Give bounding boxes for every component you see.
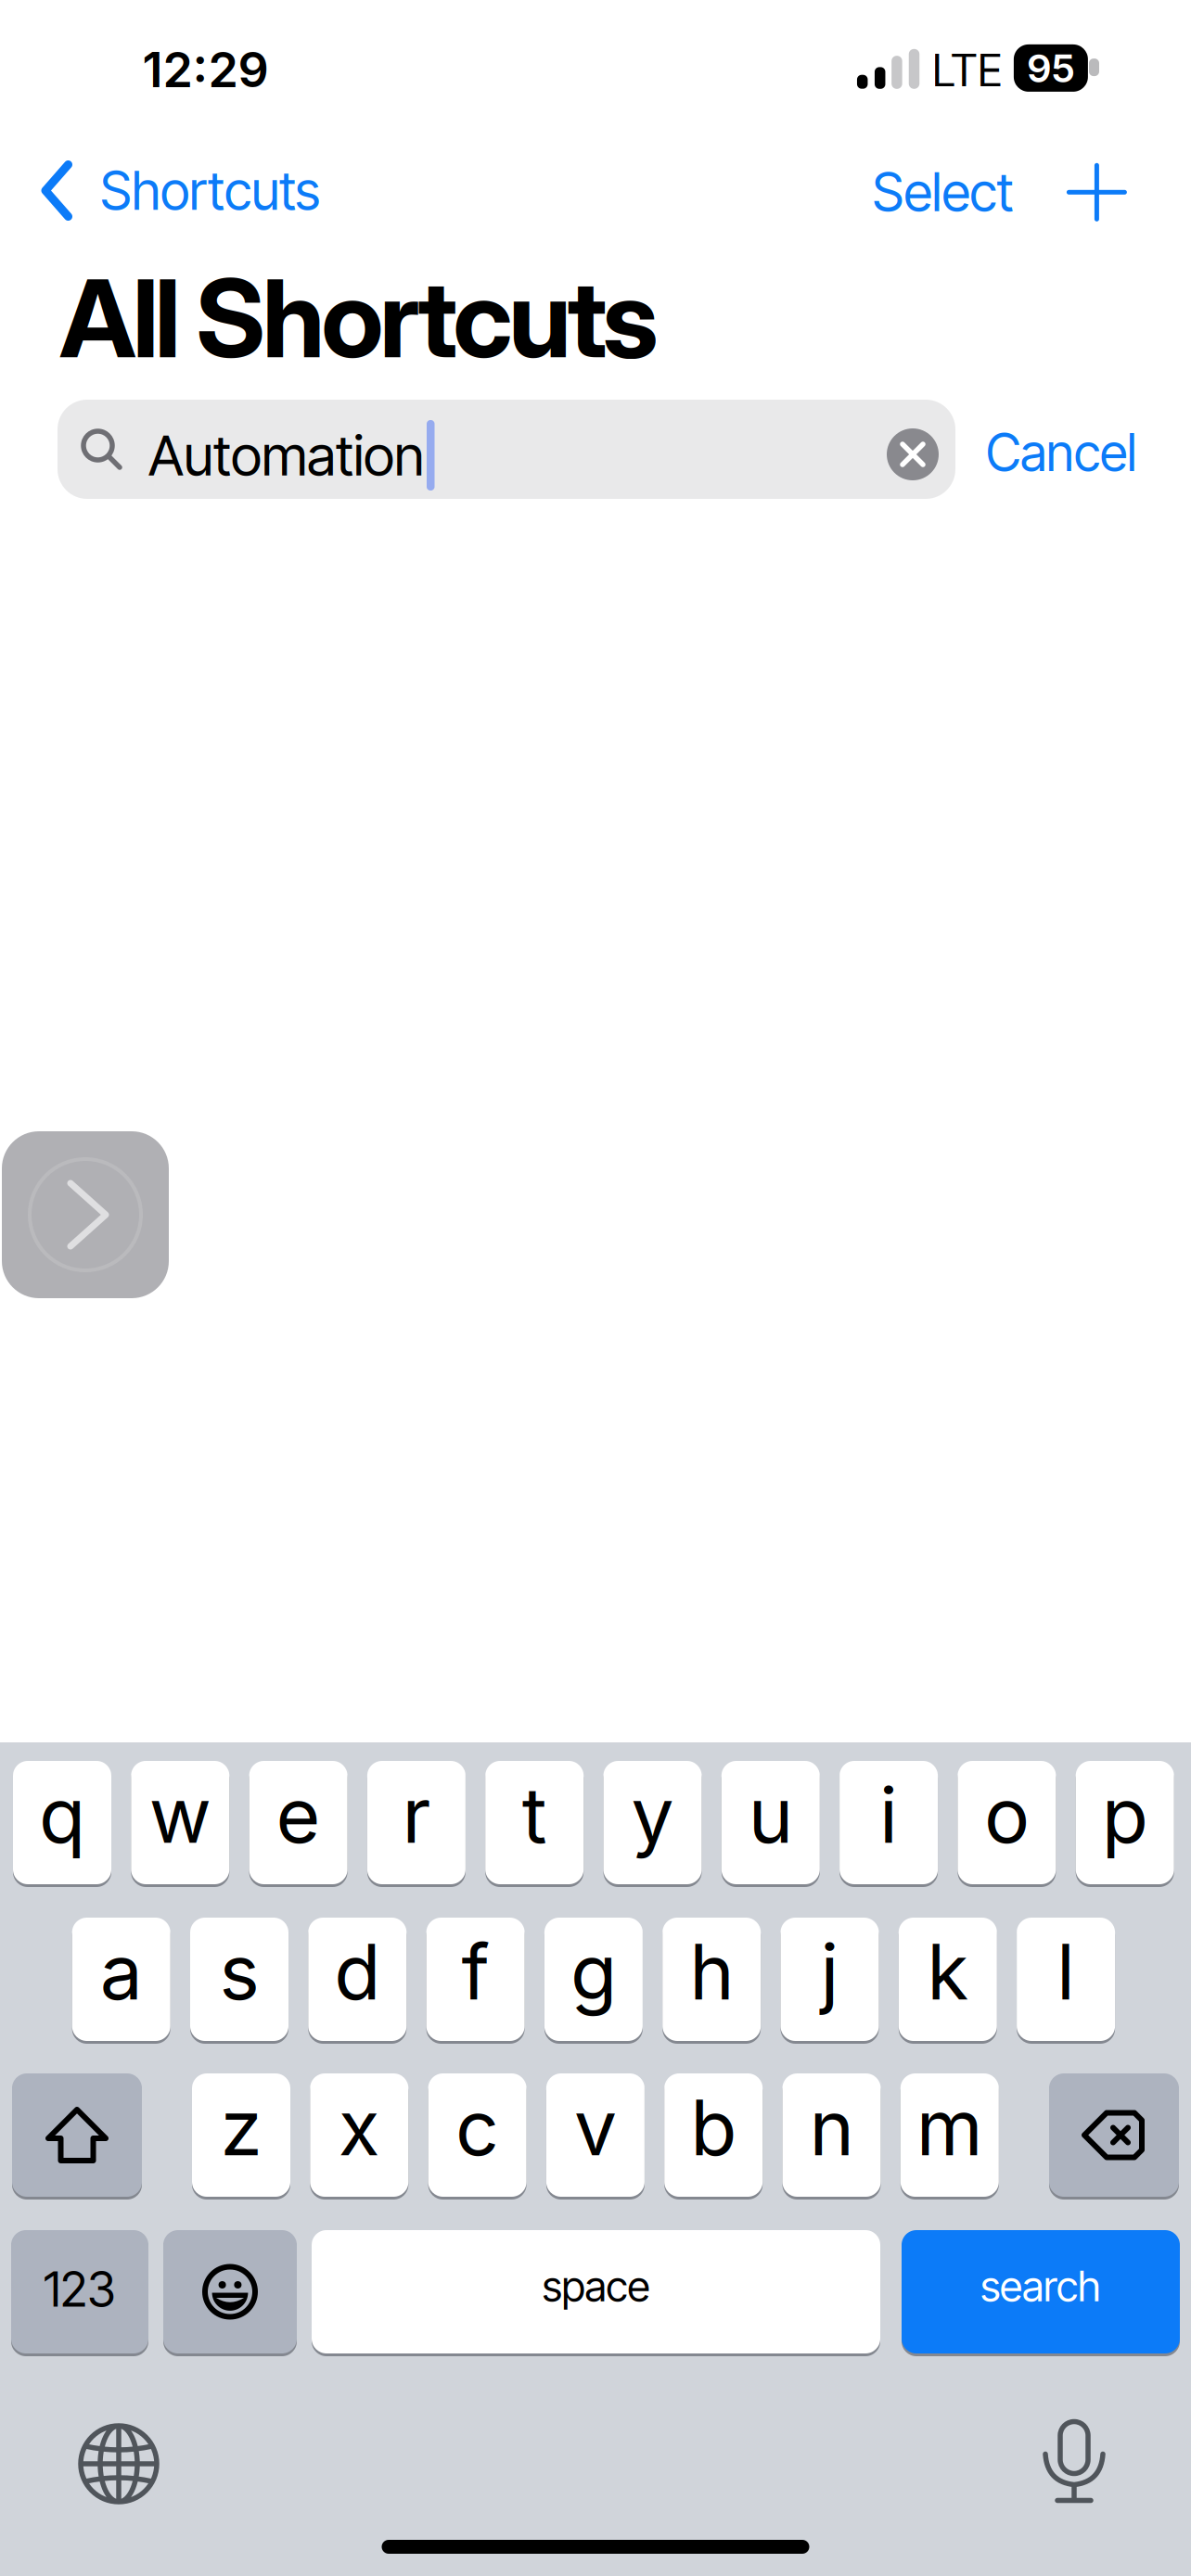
button[interactable]: Shortcut: [2, 1131, 169, 1298]
staticText: z: [220, 2082, 262, 2174]
button[interactable]: search: [902, 2230, 1180, 2353]
button[interactable]: t: [485, 1761, 584, 1884]
staticText: p: [1102, 1769, 1148, 1861]
button[interactable]: Select: [872, 160, 1013, 224]
staticText: Cancel: [986, 422, 1136, 483]
button[interactable]: 123: [11, 2230, 148, 2353]
staticText: t: [522, 1769, 547, 1861]
staticText: search: [980, 2261, 1101, 2311]
staticText: k: [927, 1926, 969, 2018]
staticText: v: [574, 2082, 617, 2174]
staticText: s: [219, 1926, 259, 2018]
button[interactable]: d: [308, 1918, 407, 2041]
button[interactable]: i: [840, 1761, 938, 1884]
staticText: Shortcuts: [100, 159, 320, 223]
staticText: LTE: [932, 44, 1002, 97]
staticText: a: [100, 1926, 143, 2018]
button[interactable]: a: [72, 1918, 170, 2041]
button[interactable]: Automation: [58, 400, 955, 499]
staticText: 95: [1027, 45, 1074, 92]
button[interactable]: v: [546, 2073, 645, 2197]
staticText: Select: [872, 160, 1013, 224]
staticText: f: [462, 1926, 489, 2018]
staticText: 12:29: [142, 40, 269, 99]
button[interactable]: m: [900, 2073, 999, 2197]
button[interactable]: Shift: [12, 2073, 142, 2197]
button[interactable]: z: [192, 2073, 290, 2197]
button[interactable]: Dictate: [1042, 2419, 1107, 2507]
staticText: u: [748, 1769, 793, 1861]
button[interactable]: Next keyboard: [77, 2422, 160, 2506]
staticText: space: [542, 2261, 650, 2311]
button[interactable]: p: [1076, 1761, 1174, 1884]
button[interactable]: h: [662, 1918, 761, 2041]
button[interactable]: x: [310, 2073, 408, 2197]
button[interactable]: q: [13, 1761, 111, 1884]
button[interactable]: j: [781, 1918, 879, 2041]
staticText: m: [916, 2082, 983, 2174]
button[interactable]: Shortcuts: [41, 149, 430, 232]
button[interactable]: o: [958, 1761, 1056, 1884]
staticText: d: [334, 1926, 381, 2018]
staticText: x: [338, 2082, 380, 2174]
button[interactable]: space: [312, 2230, 880, 2353]
button[interactable]: Delete: [1049, 2073, 1179, 2197]
staticText: o: [984, 1769, 1030, 1861]
staticText: y: [631, 1769, 674, 1861]
staticText: g: [570, 1926, 617, 2018]
staticText: All Shortcuts: [59, 253, 658, 383]
button[interactable]: u: [721, 1761, 820, 1884]
button[interactable]: s: [190, 1918, 288, 2041]
staticText: i: [879, 1769, 898, 1861]
staticText: n: [809, 2082, 854, 2174]
button[interactable]: c: [428, 2073, 526, 2197]
button[interactable]: Cancel: [858, 411, 1136, 494]
button[interactable]: Clear text: [887, 428, 939, 480]
staticText: l: [1057, 1926, 1075, 2018]
button[interactable]: l: [1017, 1918, 1115, 2041]
staticText: c: [456, 2082, 499, 2174]
staticText: r: [402, 1769, 431, 1861]
button[interactable]: Emoji: [163, 2230, 297, 2353]
button[interactable]: f: [426, 1918, 525, 2041]
staticText: j: [820, 1926, 839, 2018]
button[interactable]: Add: [1069, 165, 1125, 219]
staticText: 123: [44, 2260, 116, 2318]
button[interactable]: b: [664, 2073, 763, 2197]
button[interactable]: k: [899, 1918, 997, 2041]
button[interactable]: w: [131, 1761, 229, 1884]
staticText: b: [690, 2082, 737, 2174]
button[interactable]: e: [249, 1761, 347, 1884]
button[interactable]: r: [367, 1761, 466, 1884]
button[interactable]: n: [782, 2073, 881, 2197]
staticText: w: [149, 1769, 211, 1861]
staticText: h: [689, 1926, 734, 2018]
staticText: Automation: [148, 422, 424, 489]
button[interactable]: y: [603, 1761, 702, 1884]
staticText: e: [276, 1769, 321, 1861]
button[interactable]: g: [544, 1918, 643, 2041]
staticText: q: [39, 1769, 85, 1861]
